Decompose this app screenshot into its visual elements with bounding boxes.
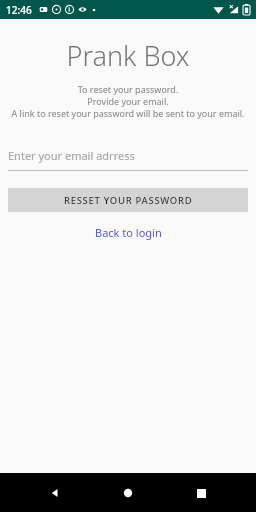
- button[interactable]: Enter your email adrress: [8, 148, 248, 171]
- staticText: Back to login: [95, 225, 162, 240]
- staticText: Prank Box: [0, 37, 256, 74]
- button[interactable]: Back: [40, 478, 70, 508]
- button[interactable]: Recent apps: [186, 478, 216, 508]
- button[interactable]: RESSET YOUR PASSWORD: [8, 188, 248, 212]
- staticText: To reset your password.: [0, 83, 256, 95]
- staticText: 12:46: [6, 3, 32, 17]
- button[interactable]: Home: [113, 478, 143, 508]
- staticText: Provide your email.: [0, 95, 256, 107]
- staticText: RESSET YOUR PASSWORD: [64, 194, 193, 207]
- staticText: A link to reset your password will be se…: [0, 107, 256, 119]
- staticText: Enter your email adrress: [8, 148, 135, 163]
- button[interactable]: Back to login: [89, 222, 168, 243]
